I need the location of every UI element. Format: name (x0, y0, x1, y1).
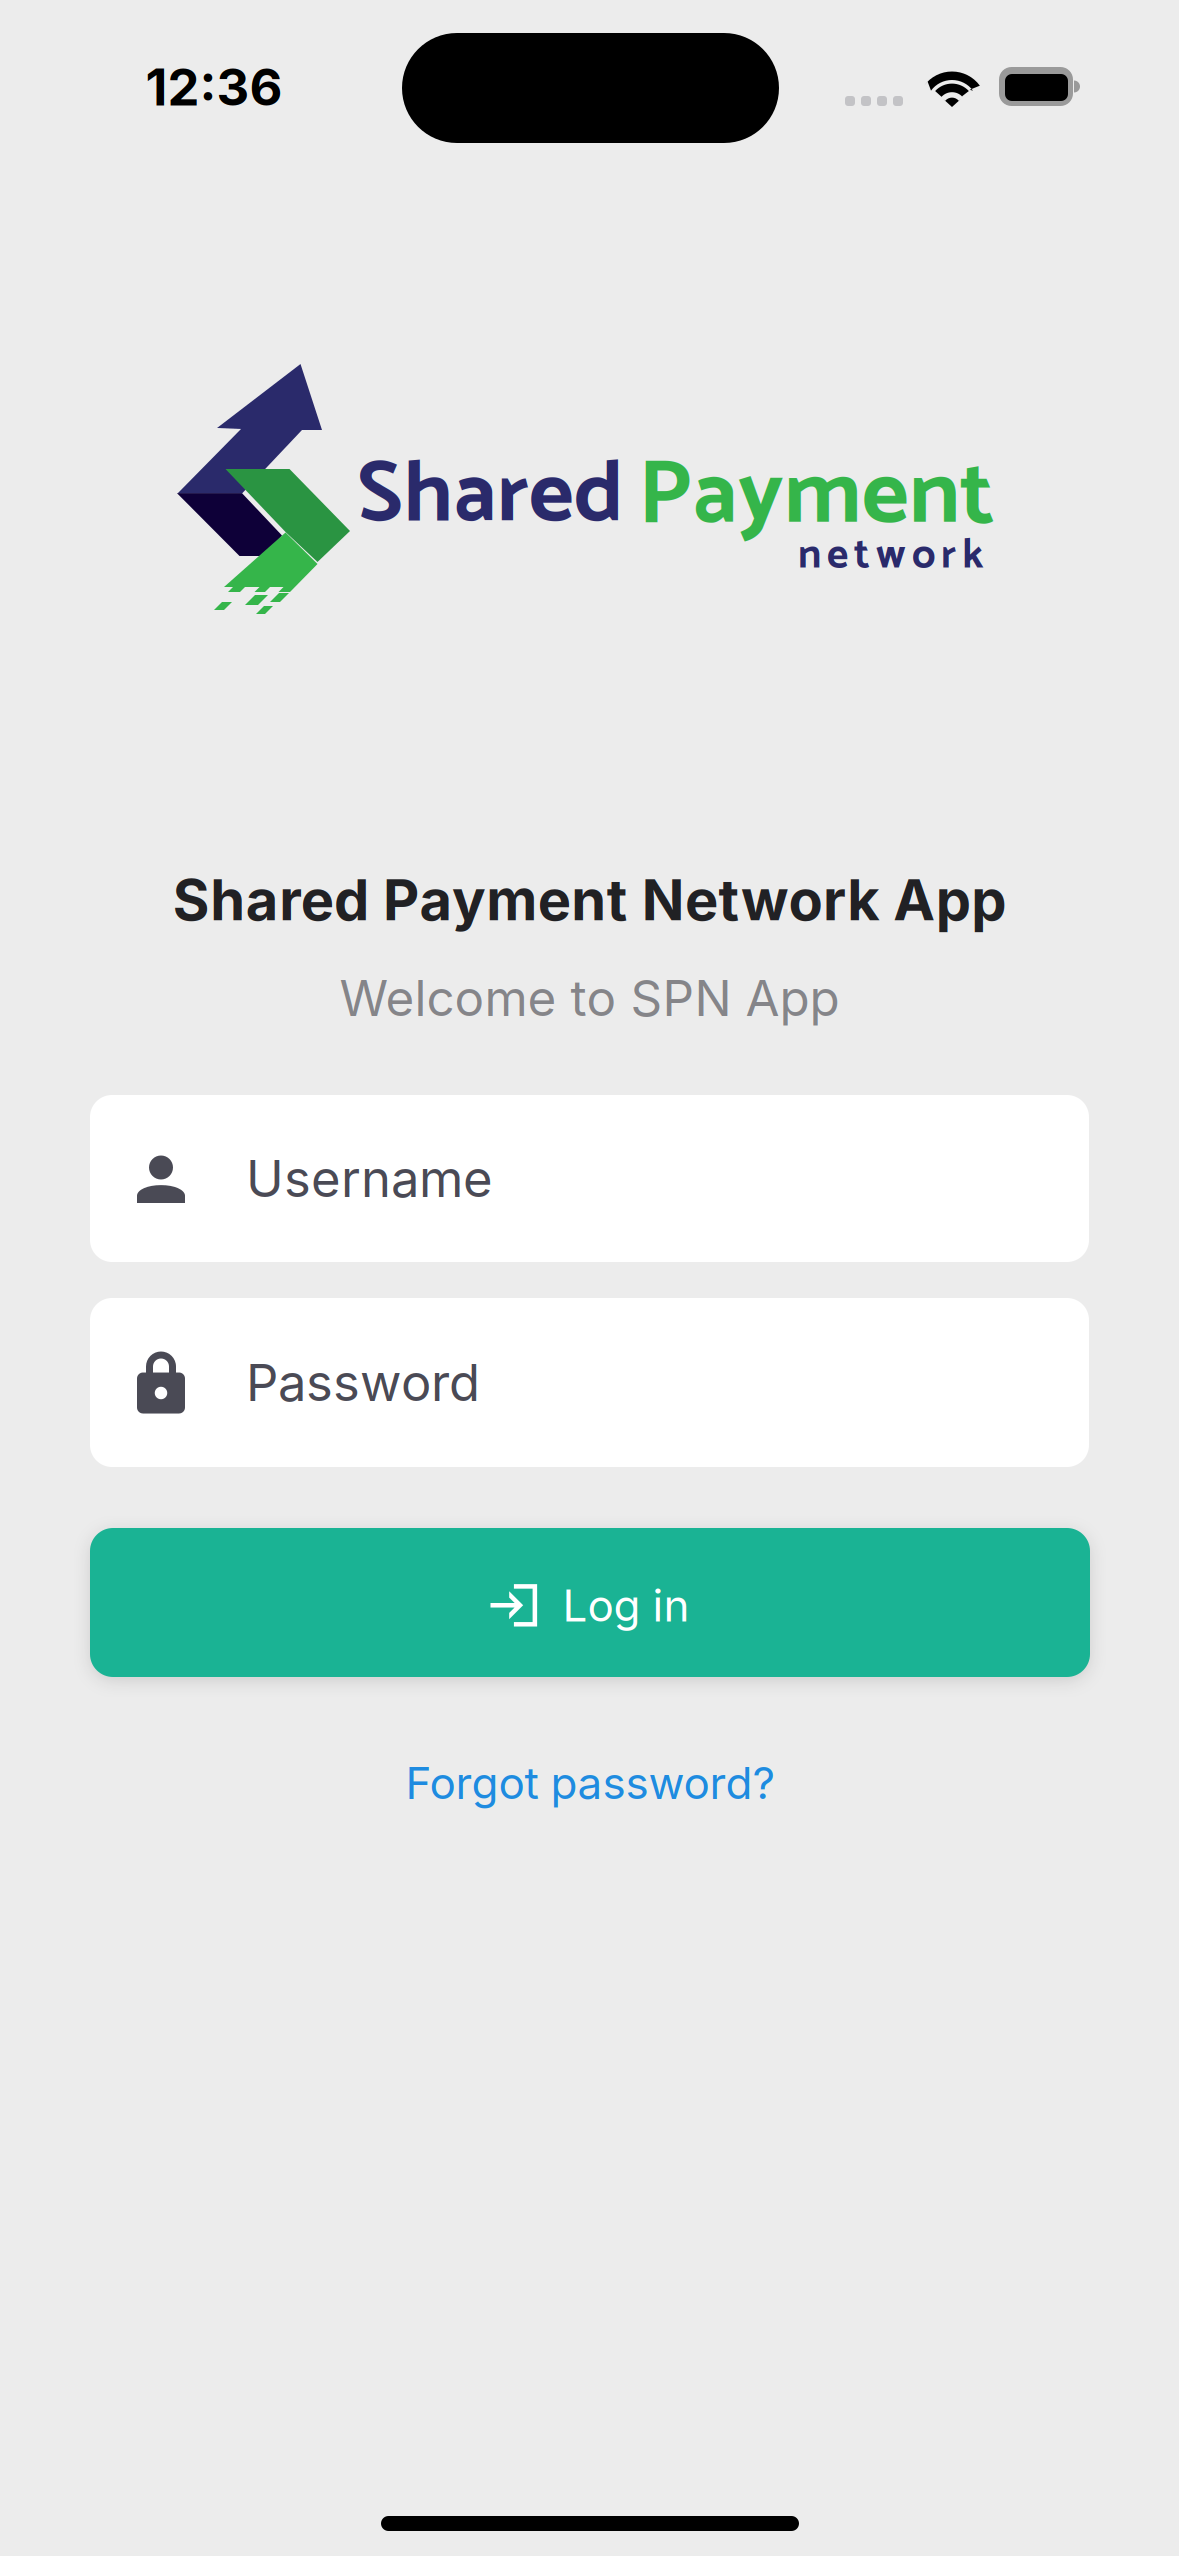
staticText: Log in (562, 1579, 689, 1632)
button[interactable]: Log in (90, 1528, 1090, 1677)
button[interactable]: Password (90, 1298, 1089, 1467)
staticText: Welcome to SPN App (339, 968, 839, 1028)
staticText: Forgot password? (405, 1756, 774, 1810)
staticText: Shared (357, 425, 624, 567)
button[interactable]: Forgot password? (340, 1748, 840, 1818)
staticText: 12:36 (145, 56, 282, 118)
staticText: Password (246, 1352, 480, 1413)
staticText: Shared Payment Network App (173, 866, 1006, 934)
staticText: network (798, 522, 983, 590)
staticText: Payment (638, 422, 995, 571)
staticText: Username (246, 1148, 493, 1209)
button[interactable]: Username (90, 1095, 1089, 1262)
